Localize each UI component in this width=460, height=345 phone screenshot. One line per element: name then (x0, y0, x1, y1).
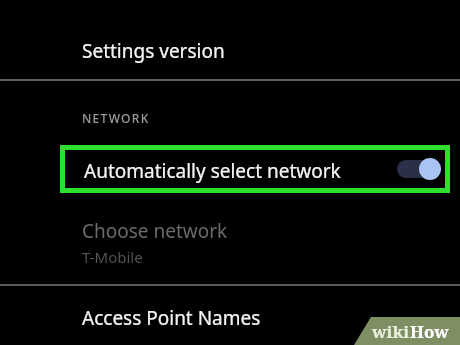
staticText: Settings version (82, 38, 225, 64)
staticText: Automatically select network (84, 158, 341, 184)
staticText: Choose network (82, 218, 228, 244)
staticText: NETWORK (82, 110, 150, 126)
button[interactable]: Automatically select network (60, 145, 450, 193)
staticText: wiki (372, 320, 410, 343)
staticText: T-Mobile (82, 247, 143, 267)
button[interactable]: Automatically select network toggle (397, 158, 441, 180)
button[interactable]: Settings version (0, 0, 460, 79)
button[interactable]: Access Point Names (0, 286, 460, 345)
button[interactable]: Choose network (0, 205, 460, 280)
staticText: Access Point Names (82, 305, 261, 331)
staticText: How (410, 320, 449, 343)
